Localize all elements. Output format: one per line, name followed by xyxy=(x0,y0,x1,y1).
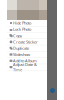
button[interactable]: Compose xyxy=(50,88,55,93)
button[interactable]: Lock Photo xyxy=(7,26,47,33)
button[interactable]: Duplicate xyxy=(7,45,47,51)
staticText: Hide Photo xyxy=(13,20,31,26)
staticText: Duplicate xyxy=(13,45,29,51)
staticText: Lock Photo xyxy=(13,27,31,32)
staticText: Copy xyxy=(13,33,22,38)
button[interactable]: Adjust Date & Time xyxy=(7,64,47,70)
button[interactable]: Hide Photo xyxy=(7,20,47,26)
button[interactable]: Copy xyxy=(7,33,47,39)
button[interactable]: Slideshow xyxy=(7,51,47,58)
staticText: Slideshow xyxy=(13,52,30,57)
button[interactable]: Create Sticker xyxy=(7,39,47,45)
staticText: Create Sticker xyxy=(13,39,38,44)
staticText: Adjust Date & Time xyxy=(13,62,37,72)
button[interactable]: Add to Album xyxy=(7,58,47,64)
staticText: Add to Album xyxy=(13,58,37,63)
